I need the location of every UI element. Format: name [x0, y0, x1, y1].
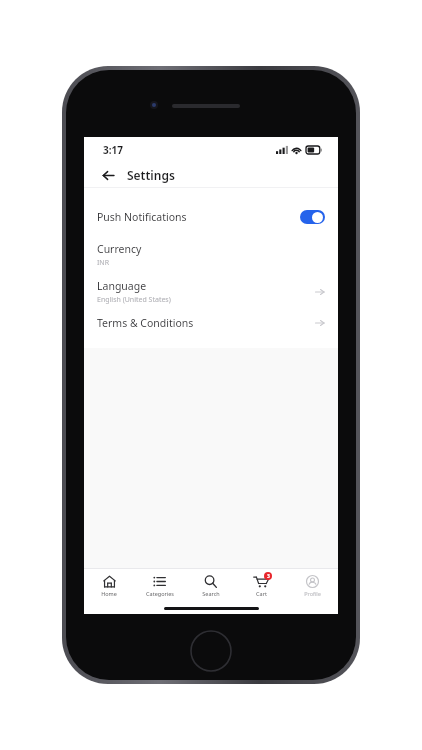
staticText: Language — [97, 279, 147, 293]
staticText: Categories — [146, 590, 174, 597]
button[interactable]: Currency — [97, 242, 325, 268]
staticText: Home — [101, 590, 117, 597]
staticText: Cart — [256, 590, 267, 597]
button[interactable]: Categories — [134, 569, 185, 602]
staticText: Push Notifications — [97, 210, 300, 224]
button[interactable]: Terms & Conditions — [97, 316, 325, 330]
button[interactable]: Home — [84, 569, 134, 602]
button[interactable]: Push notifications toggle — [300, 210, 325, 224]
staticText: Search — [202, 590, 220, 597]
staticText: English (United States) — [97, 295, 171, 305]
button[interactable]: Push Notifications — [97, 204, 325, 230]
staticText: Currency — [97, 242, 142, 256]
button[interactable]: 3 — [236, 569, 287, 602]
button[interactable]: Search — [185, 569, 236, 602]
staticText: Profile — [304, 590, 321, 597]
button[interactable]: Profile — [287, 569, 338, 602]
button[interactable]: Back — [97, 164, 119, 186]
staticText: 3:17 — [103, 143, 123, 157]
staticText: Terms & Conditions — [97, 316, 194, 330]
button[interactable]: Language — [97, 279, 325, 305]
staticText: Settings — [127, 167, 175, 183]
staticText: INR — [97, 258, 110, 268]
staticText: 3 — [267, 573, 270, 580]
